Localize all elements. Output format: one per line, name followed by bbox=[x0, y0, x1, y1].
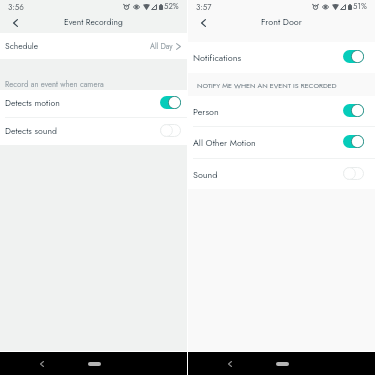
button[interactable]: On bbox=[343, 135, 364, 148]
staticText: NOTIFY ME WHEN AN EVENT IS RECORDED bbox=[197, 80, 337, 90]
staticText: Detects sound bbox=[5, 125, 57, 138]
staticText: All Day bbox=[150, 41, 173, 52]
button[interactable]: On bbox=[343, 50, 364, 63]
staticText: Notifications bbox=[193, 51, 242, 64]
staticText: 3:56 bbox=[8, 1, 24, 13]
button[interactable]: Off bbox=[343, 167, 364, 180]
staticText: 51% bbox=[353, 1, 367, 12]
button[interactable]: Off bbox=[160, 124, 181, 137]
staticText: Event Recording bbox=[64, 16, 123, 28]
staticText: Record an event when camera bbox=[5, 79, 104, 90]
button[interactable]: All Other Motion bbox=[188, 127, 375, 158]
button[interactable]: Back bbox=[223, 357, 237, 371]
button[interactable]: Person bbox=[188, 96, 375, 126]
button[interactable]: Detects sound bbox=[0, 118, 187, 145]
button[interactable]: Notifications bbox=[188, 42, 375, 73]
staticText: Sound bbox=[193, 168, 218, 181]
staticText: Front Door bbox=[261, 15, 302, 28]
staticText: All Other Motion bbox=[193, 136, 256, 149]
button[interactable]: Back bbox=[35, 357, 49, 371]
staticText: Schedule bbox=[5, 40, 39, 52]
button[interactable]: Home bbox=[81, 357, 107, 371]
button[interactable]: Sound bbox=[188, 159, 375, 189]
button[interactable]: Detects motion bbox=[0, 90, 187, 117]
button[interactable]: Schedule bbox=[0, 33, 187, 59]
staticText: 52% bbox=[164, 1, 179, 12]
staticText: Person bbox=[193, 105, 219, 118]
button[interactable]: Home bbox=[269, 357, 295, 371]
button[interactable]: Navigate up bbox=[194, 14, 212, 31]
button[interactable]: On bbox=[160, 96, 181, 109]
button[interactable]: On bbox=[343, 104, 364, 117]
button[interactable]: Navigate up bbox=[6, 14, 24, 31]
staticText: 3:57 bbox=[196, 1, 212, 13]
staticText: Detects motion bbox=[5, 97, 60, 110]
